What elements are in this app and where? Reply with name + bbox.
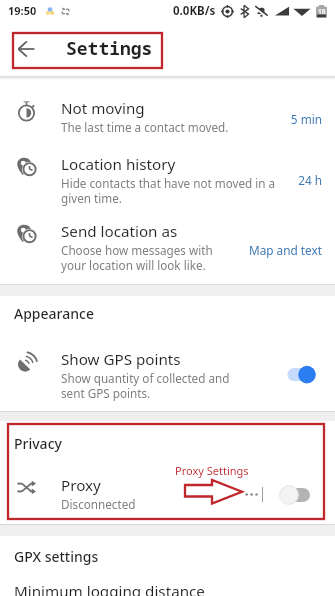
button[interactable]: Proxy settings [242, 484, 260, 504]
staticText: 18 [318, 7, 326, 16]
staticText: Proxy [61, 475, 101, 496]
staticText: The last time a contact moved. [61, 119, 229, 135]
staticText: Minimum logging distance [14, 581, 205, 596]
staticText: Privacy [14, 434, 62, 453]
staticText: 5 min [290, 111, 322, 127]
staticText: Settings [66, 36, 153, 61]
staticText: GPX settings [14, 547, 99, 566]
staticText: Appearance [14, 304, 94, 323]
staticText: Proxy Settings [175, 463, 249, 478]
staticText: Show GPS points [61, 349, 181, 370]
staticText: Show quantity of collected and sent GPS … [61, 370, 239, 401]
staticText: Map and text [248, 242, 322, 258]
button[interactable]: Back [6, 29, 46, 69]
button[interactable]: Location history [0, 154, 335, 209]
staticText: Hide contacts that have not moved in a g… [61, 175, 281, 206]
button[interactable]: Proxy [0, 475, 335, 515]
staticText: Send location as [61, 221, 178, 242]
staticText: Disconnected [61, 496, 136, 512]
staticText: Choose how messages with your location w… [61, 242, 213, 273]
staticText: 0.0KB/s [173, 3, 216, 19]
button[interactable]: Send location as [0, 221, 335, 276]
staticText: 24 h [298, 172, 322, 188]
button[interactable]: Show GPS points toggle [285, 363, 319, 387]
staticText: Location history [61, 154, 176, 175]
button[interactable]: Not moving [0, 98, 335, 138]
staticText: 19:50 [8, 3, 37, 18]
staticText: Not moving [61, 98, 145, 119]
button[interactable]: Proxy toggle [278, 484, 314, 507]
button[interactable]: Show GPS points [0, 349, 335, 404]
